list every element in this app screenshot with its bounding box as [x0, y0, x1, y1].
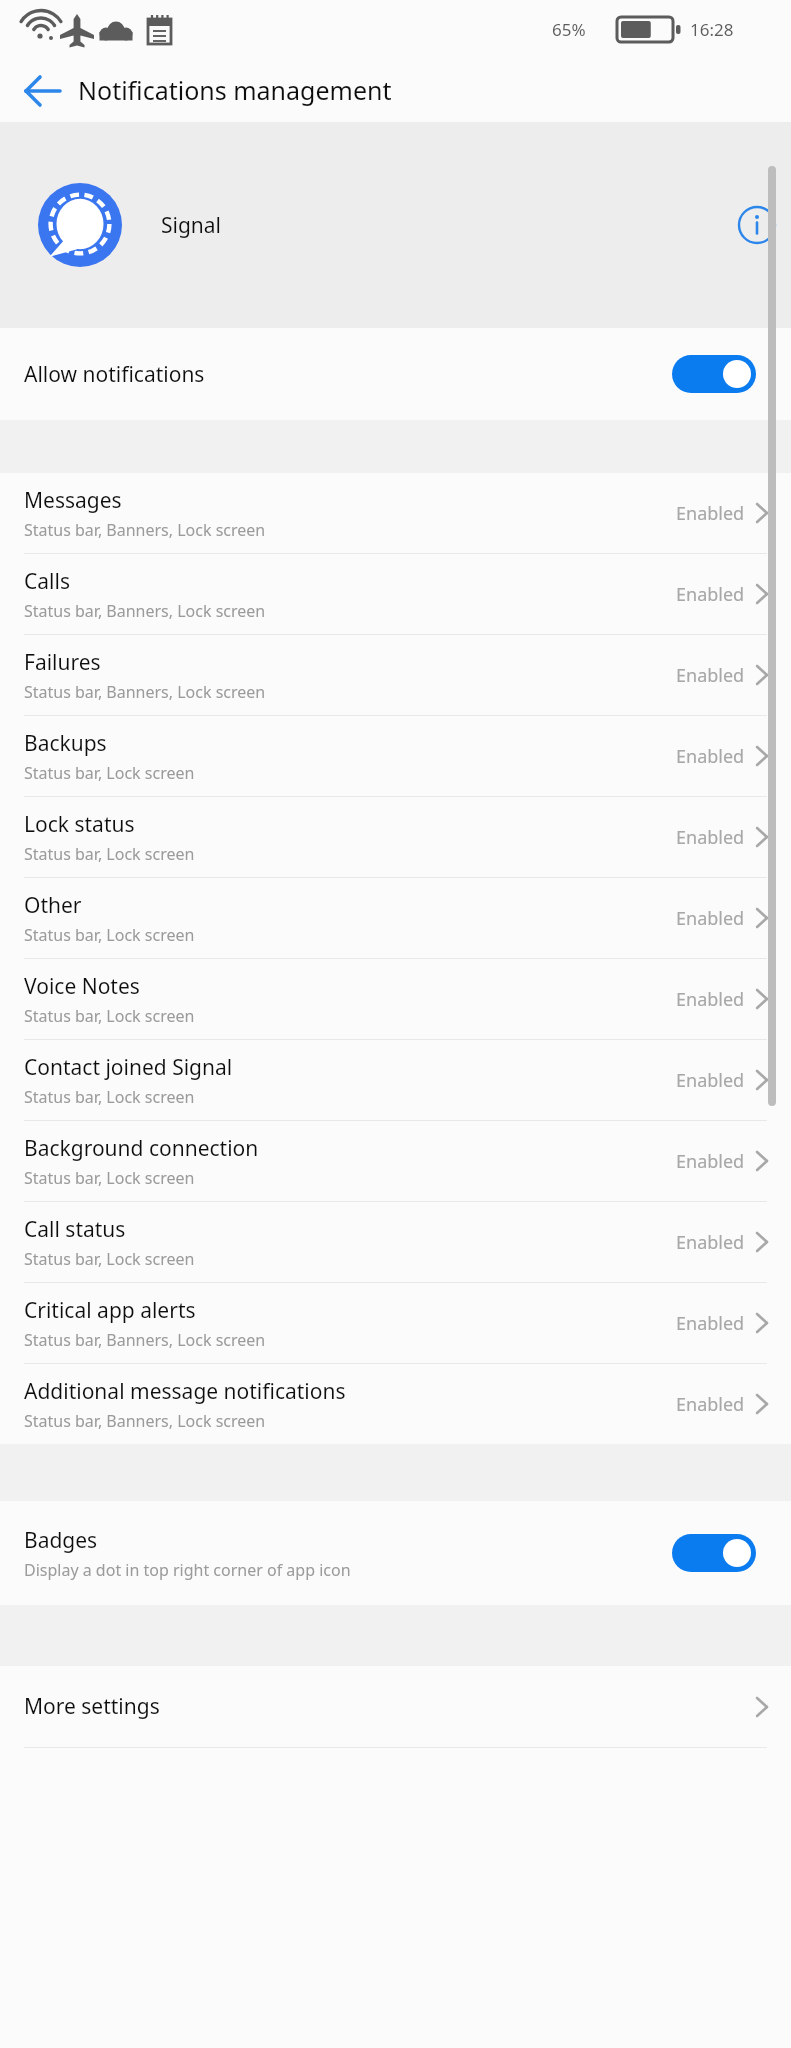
staticText: Calls: [24, 567, 70, 596]
staticText: Enabled: [676, 825, 745, 850]
staticText: 65%: [552, 18, 586, 41]
staticText: Enabled: [676, 744, 745, 769]
staticText: Enabled: [676, 1311, 745, 1336]
staticText: Voice Notes: [24, 972, 140, 1001]
staticText: Status bar, Banners, Lock screen: [24, 519, 266, 541]
button[interactable]: Background connection: [0, 1121, 791, 1201]
staticText: Enabled: [676, 1068, 745, 1093]
staticText: Background connection: [24, 1134, 259, 1163]
staticText: Status bar, Lock screen: [24, 762, 195, 784]
staticText: Enabled: [676, 1230, 745, 1255]
button[interactable]: Badges: [0, 1501, 791, 1605]
staticText: Backups: [24, 729, 107, 758]
staticText: Contact joined Signal: [24, 1053, 233, 1082]
staticText: Status bar, Banners, Lock screen: [24, 681, 266, 703]
button[interactable]: Call status: [0, 1202, 791, 1282]
staticText: Enabled: [676, 582, 745, 607]
staticText: Other: [24, 891, 82, 920]
staticText: Status bar, Lock screen: [24, 1167, 195, 1189]
staticText: Notifications management: [78, 73, 392, 107]
staticText: Signal: [161, 211, 222, 240]
staticText: Enabled: [676, 906, 745, 931]
staticText: Status bar, Lock screen: [24, 843, 195, 865]
staticText: Status bar, Banners, Lock screen: [24, 600, 266, 622]
staticText: Badges: [24, 1526, 98, 1555]
button[interactable]: Additional message notifications: [0, 1364, 791, 1444]
staticText: 16:28: [690, 18, 734, 41]
staticText: Additional message notifications: [24, 1377, 346, 1406]
button[interactable]: App info: [728, 196, 786, 254]
staticText: Enabled: [676, 501, 745, 526]
staticText: Status bar, Lock screen: [24, 1248, 195, 1270]
button[interactable]: Allow notifications: [0, 328, 791, 420]
staticText: Call status: [24, 1215, 126, 1244]
staticText: Lock status: [24, 810, 135, 839]
staticText: Status bar, Lock screen: [24, 924, 195, 946]
staticText: Display a dot in top right corner of app…: [24, 1559, 351, 1581]
staticText: More settings: [24, 1692, 160, 1721]
button[interactable]: Critical app alerts: [0, 1283, 791, 1363]
button[interactable]: Other: [0, 878, 791, 958]
staticText: Enabled: [676, 1392, 745, 1417]
button[interactable]: Backups: [0, 716, 791, 796]
staticText: Allow notifications: [24, 360, 205, 389]
staticText: Status bar, Lock screen: [24, 1005, 195, 1027]
staticText: Messages: [24, 486, 122, 515]
staticText: Enabled: [676, 1149, 745, 1174]
button[interactable]: Calls: [0, 554, 791, 634]
button[interactable]: Failures: [0, 635, 791, 715]
button[interactable]: Lock status: [0, 797, 791, 877]
button[interactable]: Messages: [0, 473, 791, 553]
button[interactable]: Back: [6, 58, 74, 122]
staticText: Critical app alerts: [24, 1296, 196, 1325]
staticText: Failures: [24, 648, 101, 677]
button[interactable]: More settings: [0, 1666, 791, 1747]
button[interactable]: Voice Notes: [0, 959, 791, 1039]
staticText: Status bar, Banners, Lock screen: [24, 1410, 266, 1432]
staticText: Status bar, Banners, Lock screen: [24, 1329, 266, 1351]
staticText: Status bar, Lock screen: [24, 1086, 195, 1108]
button[interactable]: Signal: [0, 122, 791, 328]
staticText: Enabled: [676, 987, 745, 1012]
staticText: Enabled: [676, 663, 745, 688]
button[interactable]: Contact joined Signal: [0, 1040, 791, 1120]
